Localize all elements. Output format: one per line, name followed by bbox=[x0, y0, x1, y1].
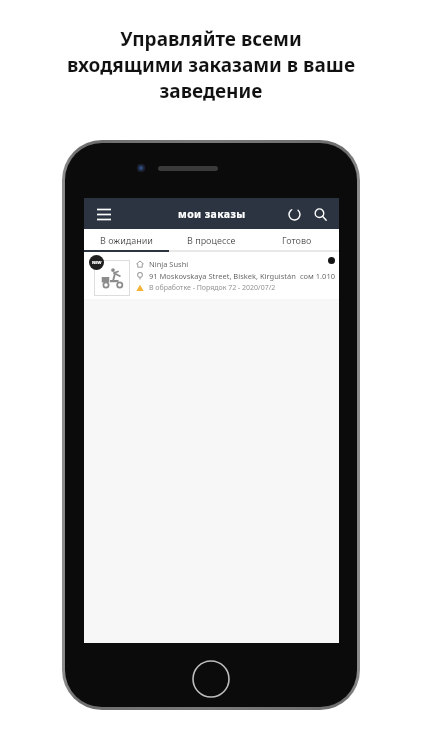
button[interactable]: Search bbox=[307, 201, 333, 227]
button[interactable]: В процессе bbox=[169, 229, 254, 250]
staticText: 91 Moskovskaya Street, Biskek, Kirguistá… bbox=[149, 271, 296, 281]
other: Home bbox=[192, 660, 230, 698]
staticText: В ожидании bbox=[100, 234, 153, 246]
staticText: В обработке - Порядок 72 - 2020/07/2 bbox=[149, 283, 276, 293]
button[interactable]: NEW bbox=[84, 252, 339, 299]
staticText: Управляйте всеми входящими заказами в ва… bbox=[67, 26, 355, 104]
button[interactable]: В ожидании bbox=[84, 229, 169, 250]
staticText: В процессе bbox=[187, 234, 236, 246]
button[interactable]: Refresh bbox=[281, 201, 307, 227]
staticText: сом 1.010 bbox=[300, 271, 335, 281]
staticText: NEW bbox=[92, 260, 102, 265]
staticText: мои заказы bbox=[178, 207, 246, 221]
button[interactable]: Готово bbox=[254, 229, 339, 250]
staticText: Ninja Sushi bbox=[149, 259, 189, 269]
staticText: Готово bbox=[282, 234, 312, 246]
button[interactable]: Menu bbox=[92, 202, 116, 226]
